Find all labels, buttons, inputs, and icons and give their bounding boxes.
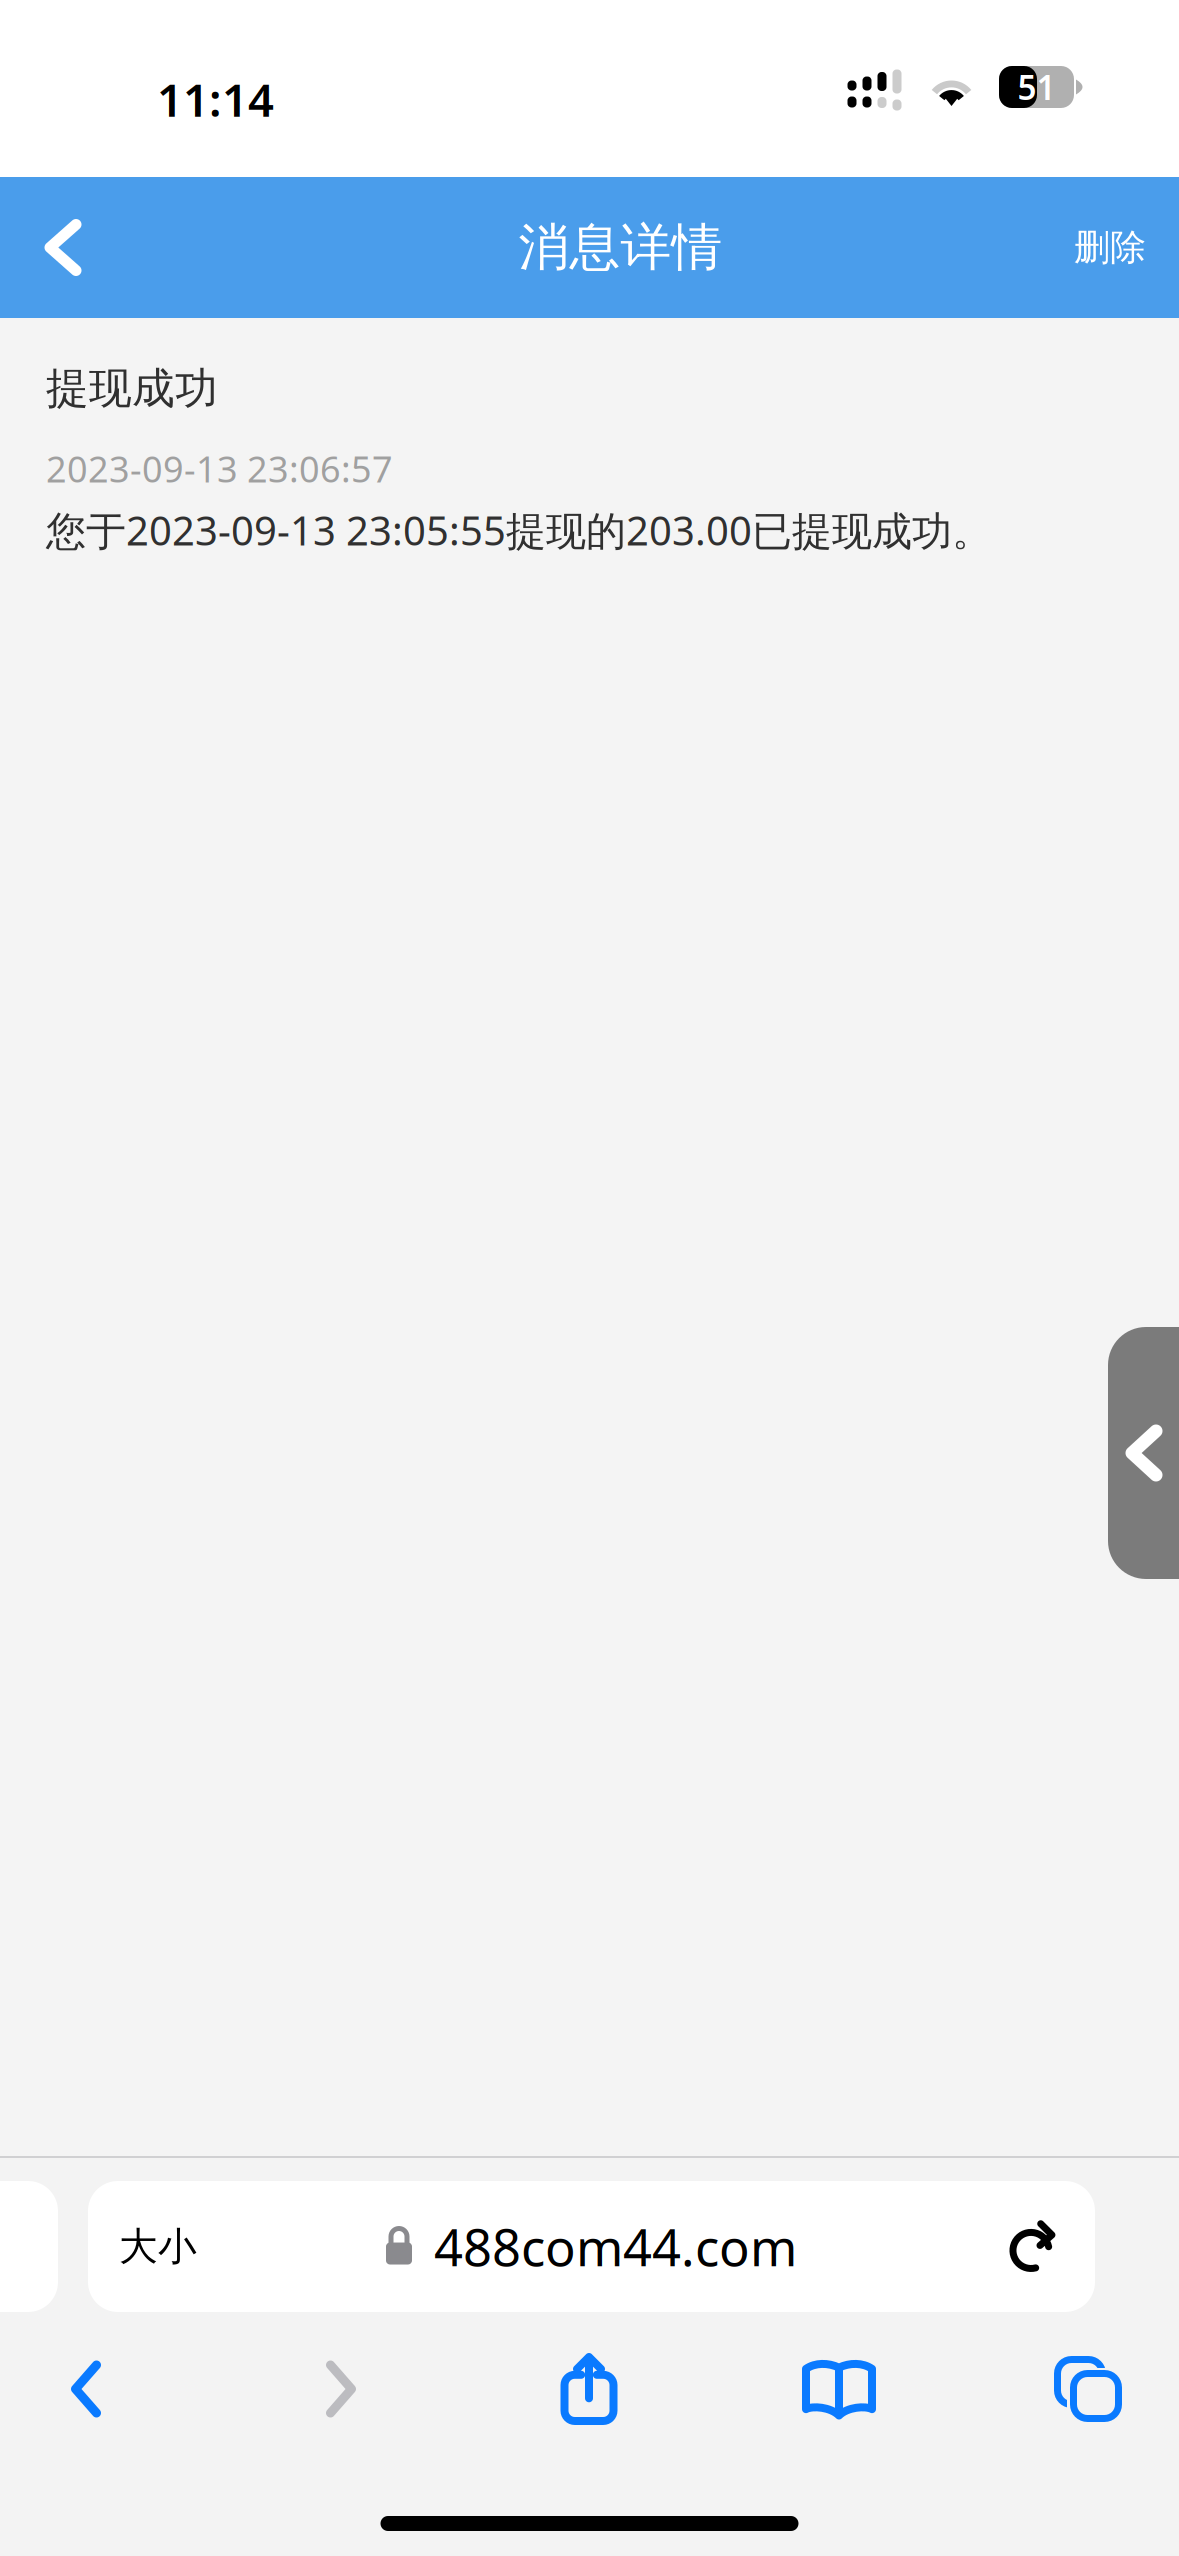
- staticText: 488com44.com: [434, 2213, 797, 2280]
- button[interactable]: Back: [31, 2334, 141, 2444]
- button[interactable]: Return to app: [1108, 1327, 1179, 1579]
- staticText: 2023-09-13 23:06:57: [46, 445, 393, 492]
- button[interactable]: Tabs: [1033, 2334, 1143, 2444]
- button[interactable]: Back: [0, 177, 126, 318]
- staticText: 提现成功: [46, 362, 218, 415]
- staticText: 您于2023-09-13 23:05:55提现的203.00已提现成功。: [46, 503, 992, 556]
- staticText: 大小: [119, 2223, 197, 2270]
- button[interactable]: Forward: [286, 2334, 396, 2444]
- staticText: 51: [1017, 65, 1055, 109]
- button[interactable]: 大小: [0, 2181, 1179, 2312]
- button[interactable]: Share: [534, 2334, 644, 2444]
- button[interactable]: Bookmarks: [784, 2334, 894, 2444]
- staticText: 删除: [1074, 225, 1146, 270]
- staticText: 11:14: [157, 69, 274, 129]
- button[interactable]: 删除: [1041, 177, 1179, 318]
- staticText: 消息详情: [518, 216, 722, 279]
